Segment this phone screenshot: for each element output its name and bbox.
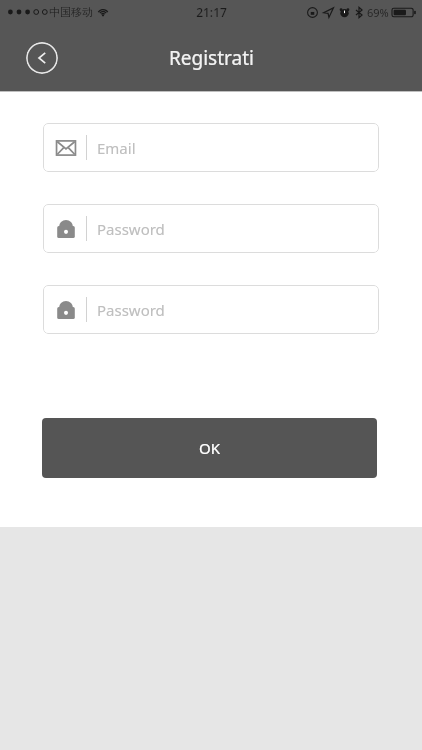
button[interactable]: Password xyxy=(43,285,379,334)
staticText: OK xyxy=(199,438,221,458)
button[interactable]: Back xyxy=(26,42,58,74)
button[interactable]: Email xyxy=(43,123,379,172)
button[interactable]: Password xyxy=(43,204,379,253)
staticText: Password xyxy=(97,219,165,239)
staticText: Registrati xyxy=(169,45,254,71)
staticText: 69% xyxy=(367,5,389,20)
staticText: 21:17 xyxy=(196,4,227,20)
staticText: Password xyxy=(97,300,165,320)
staticText: 中国移动 xyxy=(49,5,93,19)
staticText: Email xyxy=(97,138,136,158)
button[interactable]: OK xyxy=(42,418,377,478)
